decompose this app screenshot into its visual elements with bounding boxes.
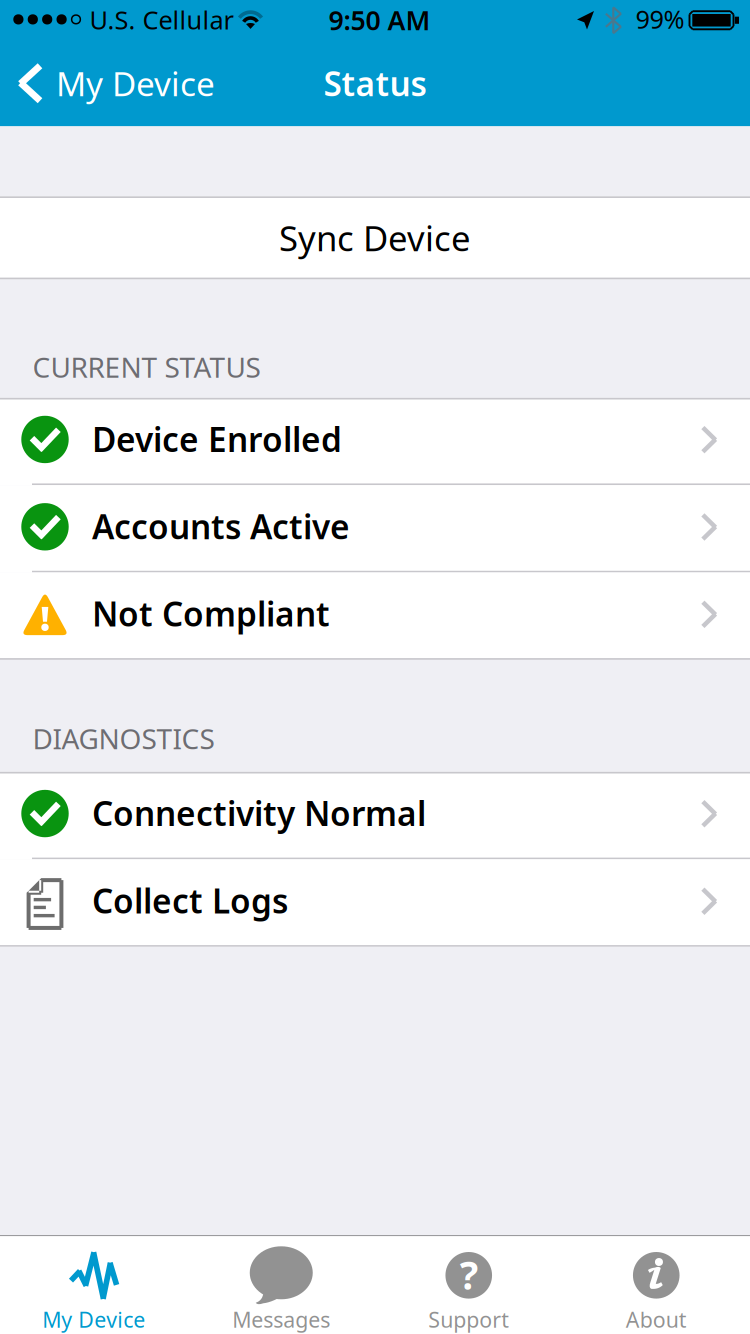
staticText: My Device: [56, 61, 215, 105]
button[interactable]: Not Compliant: [0, 572, 750, 660]
button[interactable]: ?: [375, 1236, 562, 1334]
button[interactable]: My Device: [0, 1236, 187, 1334]
staticText: Accounts Active: [92, 504, 350, 548]
staticText: Device Enrolled: [92, 417, 342, 461]
staticText: My Device: [42, 1305, 145, 1334]
staticText: Connectivity Normal: [92, 791, 426, 835]
button[interactable]: Collect Logs: [0, 859, 750, 947]
button[interactable]: Device Enrolled: [0, 398, 750, 485]
staticText: Collect Logs: [92, 878, 288, 923]
button[interactable]: Messages: [187, 1236, 375, 1334]
staticText: ?: [460, 1249, 478, 1300]
staticText: Sync Device: [279, 215, 471, 261]
button[interactable]: My Device: [0, 53, 235, 114]
button[interactable]: Sync Device: [0, 196, 750, 279]
staticText: DIAGNOSTICS: [32, 720, 214, 757]
button[interactable]: About: [562, 1236, 750, 1334]
staticText: About: [626, 1305, 687, 1334]
staticText: Not Compliant: [92, 591, 330, 636]
staticText: Messages: [232, 1305, 330, 1334]
button[interactable]: Accounts Active: [0, 485, 750, 572]
button[interactable]: Connectivity Normal: [0, 772, 750, 859]
staticText: CURRENT STATUS: [32, 348, 260, 385]
staticText: 9:50 AM: [328, 2, 430, 37]
staticText: Status: [323, 61, 426, 105]
staticText: 99%: [635, 2, 684, 36]
staticText: U.S. Cellular: [89, 3, 233, 36]
staticText: Support: [428, 1305, 509, 1334]
